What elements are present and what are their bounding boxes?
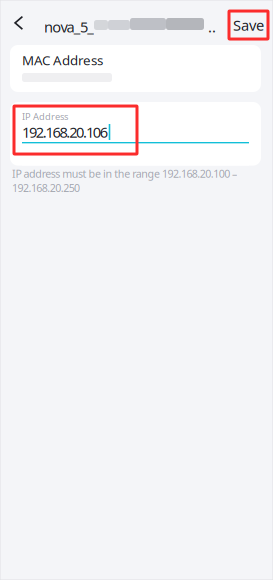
button[interactable]: Back [5, 9, 33, 37]
staticText: nova_5_ [44, 17, 94, 36]
staticText: 192.168.20.250 [12, 181, 80, 195]
staticText: MAC Address [22, 51, 103, 69]
staticText: IP address must be in the range 192.168.… [12, 167, 237, 181]
staticText: 192.168.20.106 [22, 122, 108, 142]
button[interactable]: IP Address [10, 102, 261, 166]
staticText: IP Address [22, 110, 68, 123]
staticText: .. [208, 17, 216, 36]
button[interactable]: Save [229, 11, 268, 39]
staticText: Save [233, 15, 264, 35]
